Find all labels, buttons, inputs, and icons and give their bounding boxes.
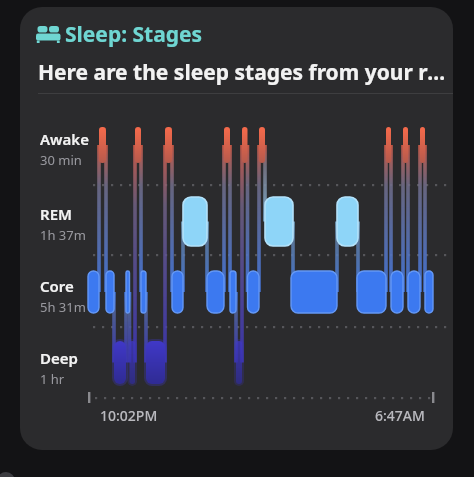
staticText: Deep	[40, 348, 78, 368]
staticText: Here are the sleep stages from your reco…	[38, 58, 454, 87]
button[interactable]: Deep	[40, 348, 78, 388]
staticText: 1h 37m	[40, 226, 86, 244]
staticText: REM	[40, 204, 72, 224]
button[interactable]: REM	[40, 204, 86, 244]
button[interactable]: Awake	[40, 129, 89, 169]
button[interactable]: Sleep: Stages	[36, 20, 203, 49]
staticText: 5h 31m	[40, 298, 86, 316]
staticText: 30 min	[40, 151, 82, 169]
staticText: 1 hr	[40, 370, 65, 388]
button[interactable]	[20, 7, 453, 450]
staticText: 6:47AM	[375, 406, 425, 425]
staticText: Sleep: Stages	[65, 20, 203, 49]
staticText: 10:02PM	[100, 406, 158, 425]
staticText: Awake	[40, 129, 89, 149]
staticText: Core	[40, 276, 74, 296]
button[interactable]: Core	[40, 276, 86, 316]
